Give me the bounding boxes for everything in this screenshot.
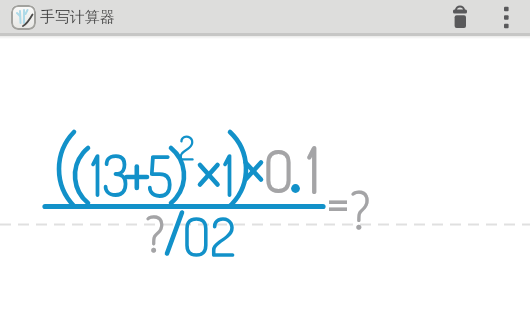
staticText: ? bbox=[351, 179, 370, 241]
button[interactable] bbox=[0, 0, 120, 33]
button[interactable] bbox=[488, 0, 524, 33]
staticText: 1 bbox=[223, 138, 235, 209]
staticText: O bbox=[263, 133, 294, 205]
staticText: ? bbox=[146, 203, 165, 264]
button[interactable] bbox=[437, 0, 483, 33]
staticText: 1 bbox=[307, 129, 320, 207]
staticText: 手写计算器 bbox=[40, 8, 115, 27]
staticText: O2 bbox=[182, 202, 236, 269]
staticText: 13 bbox=[91, 138, 130, 209]
staticText: 2 bbox=[179, 126, 195, 168]
staticText: 5 bbox=[147, 139, 173, 210]
